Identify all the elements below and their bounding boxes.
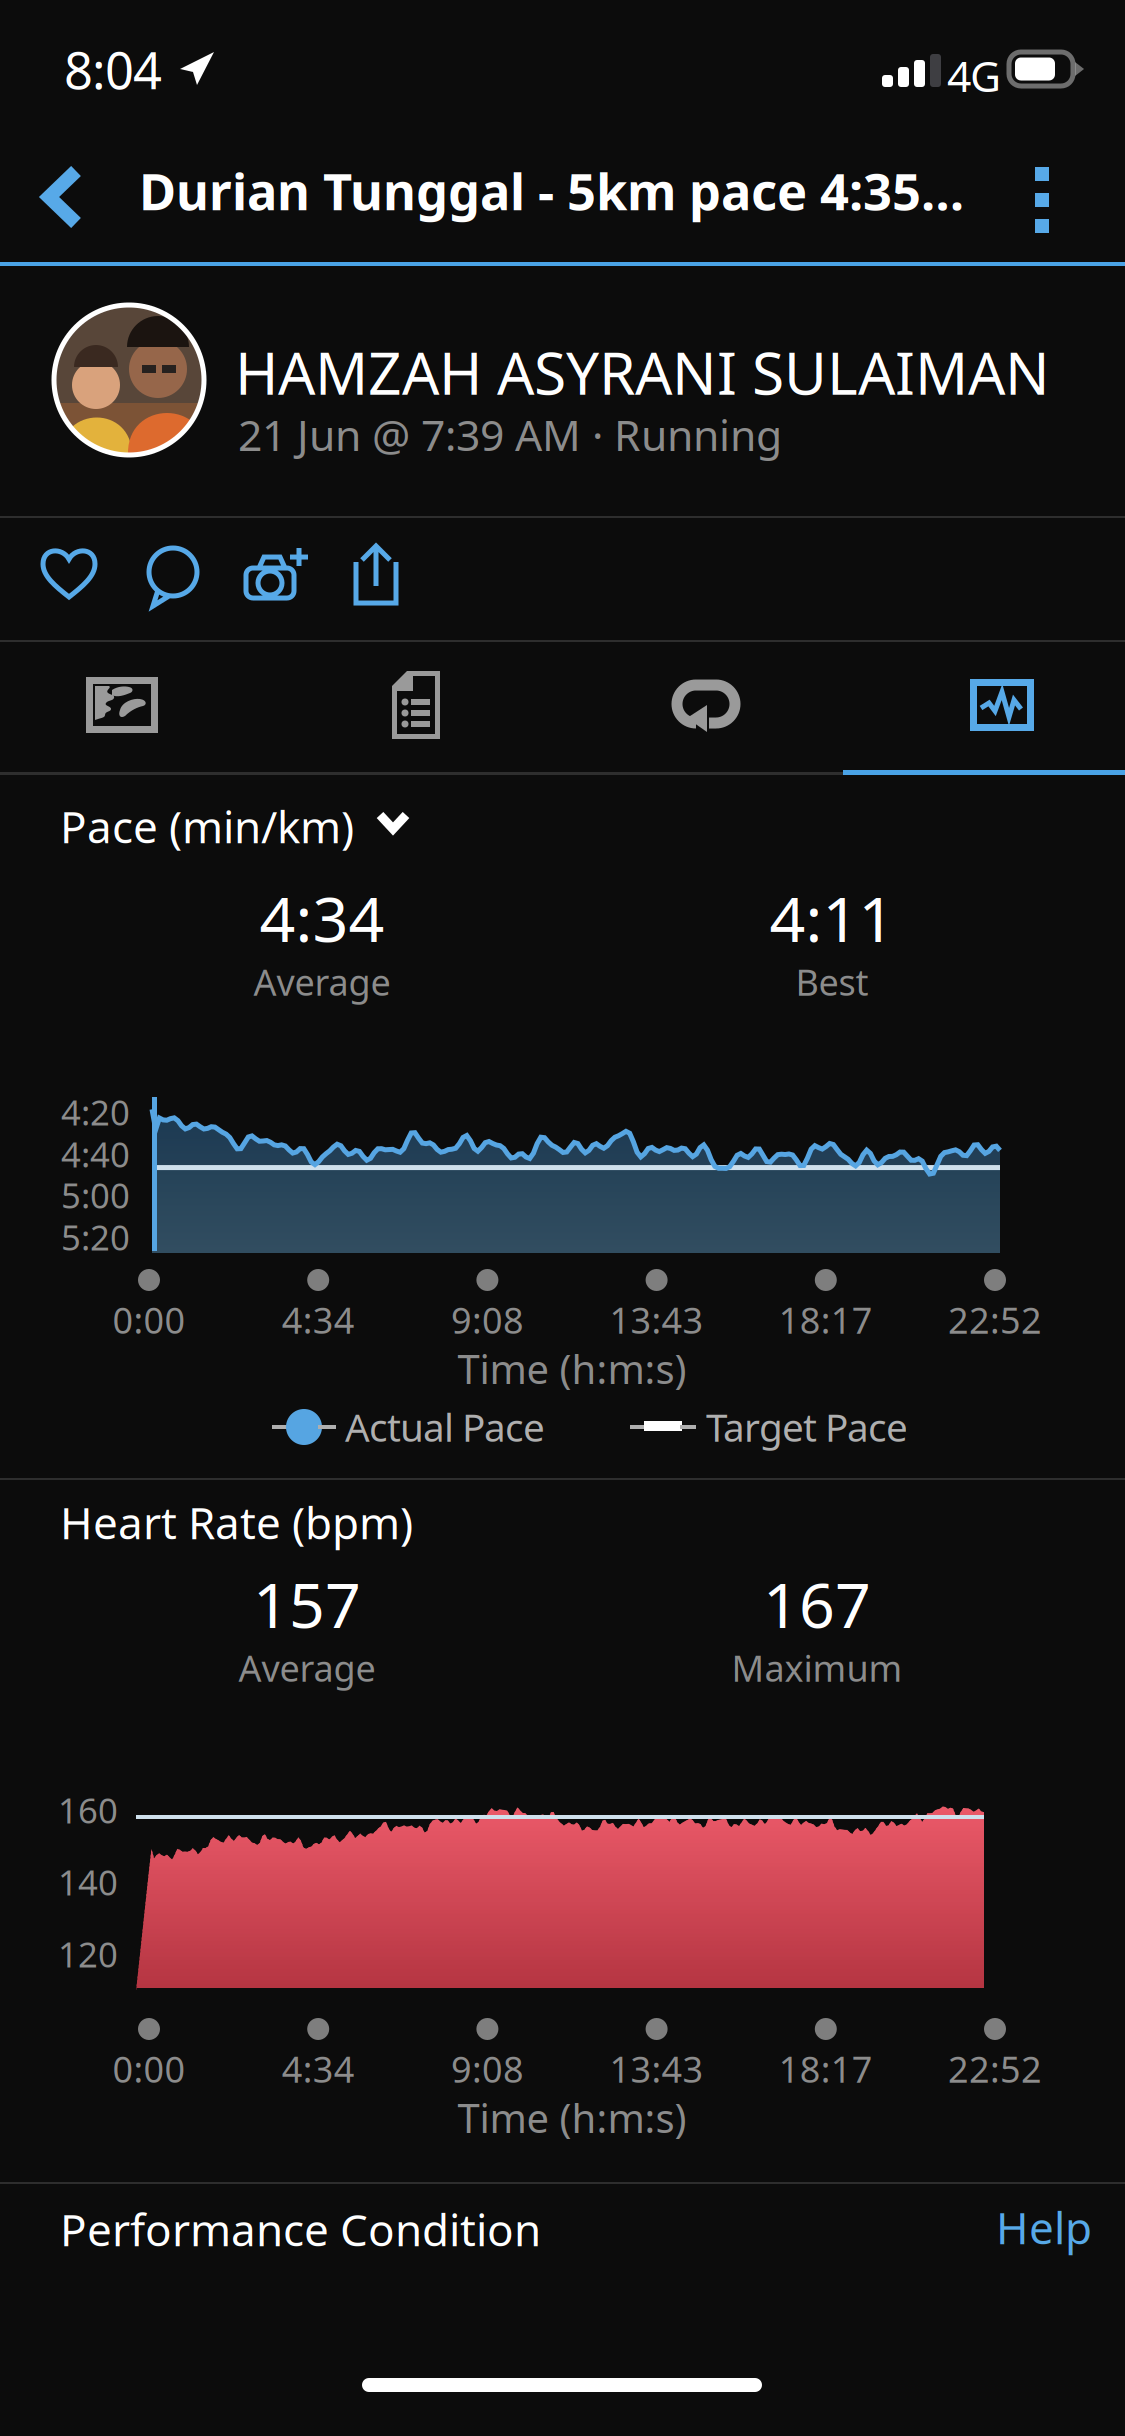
staticText: Durian Tunggal - 5km pace 4:35… (139, 157, 964, 224)
staticText: Pace (min/km) (60, 797, 354, 855)
staticText: 22:52 (948, 2045, 1042, 2093)
staticText: 4G (947, 47, 1001, 104)
staticText: 4:20 (61, 1089, 130, 1135)
button[interactable]: Laps (562, 642, 843, 772)
staticText: 157 (253, 1562, 361, 1645)
staticText: 21 Jun @ 7:39 AM · Running (238, 406, 782, 463)
staticText: 18:17 (779, 1296, 873, 1344)
staticText: 120 (58, 1931, 118, 1977)
staticText: 9:08 (451, 2045, 524, 2093)
staticText: Performance Condition (60, 2200, 541, 2258)
staticText: 18:17 (779, 2045, 873, 2093)
staticText: Average (238, 1644, 375, 1692)
staticText: Heart Rate (bpm) (60, 1493, 413, 1551)
button[interactable]: Add photo (206, 518, 309, 640)
staticText: 5:00 (61, 1172, 130, 1218)
staticText: 4:40 (61, 1131, 130, 1177)
button[interactable]: Details (281, 642, 562, 772)
staticText: 5:20 (61, 1214, 130, 1260)
staticText: HAMZAH ASYRANI SULAIMAN (235, 333, 1050, 411)
button[interactable]: Comment (103, 518, 206, 640)
staticText: 22:52 (948, 1296, 1042, 1344)
button[interactable]: Like (0, 518, 103, 640)
staticText: 167 (763, 1562, 871, 1645)
staticText: Actual Pace (345, 1401, 545, 1452)
button[interactable]: Charts (843, 642, 1125, 772)
staticText: Time (h:m:s) (457, 1342, 686, 1395)
staticText: 140 (58, 1859, 118, 1905)
staticText: 0:00 (112, 1296, 185, 1344)
staticText: 4:34 (282, 2045, 355, 2093)
button[interactable]: Back (0, 132, 120, 262)
staticText: Help (996, 2198, 1092, 2256)
staticText: 13:43 (610, 1296, 704, 1344)
staticText: 0:00 (112, 2045, 185, 2093)
staticText: 160 (58, 1787, 118, 1833)
staticText: 4:11 (769, 876, 894, 959)
staticText: 4:34 (282, 1296, 355, 1344)
staticText: Time (h:m:s) (457, 2091, 686, 2144)
button[interactable]: Help (0, 2198, 1092, 2256)
staticText: Target Pace (706, 1401, 908, 1452)
staticText: 13:43 (610, 2045, 704, 2093)
button[interactable]: Map (0, 642, 281, 772)
staticText: 8:04 (64, 36, 162, 103)
button[interactable]: More options (1009, 132, 1099, 262)
staticText: Average (253, 958, 390, 1006)
staticText: Maximum (731, 1644, 902, 1692)
staticText: Best (795, 958, 868, 1006)
staticText: 4:34 (259, 876, 384, 959)
staticText: 9:08 (451, 1296, 524, 1344)
button[interactable]: Share (309, 518, 412, 640)
